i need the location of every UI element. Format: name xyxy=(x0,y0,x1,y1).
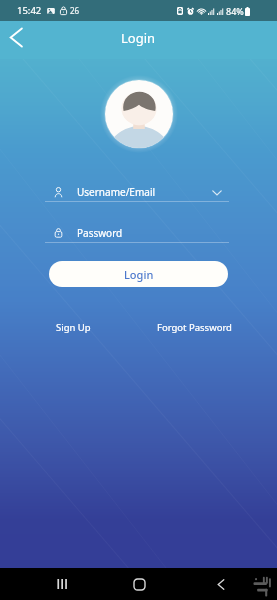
button[interactable]: Recent apps xyxy=(46,568,78,600)
staticText: 84% xyxy=(226,5,244,17)
staticText: Login xyxy=(124,267,154,282)
staticText: Username/Email xyxy=(77,185,219,199)
button[interactable]: Home xyxy=(123,568,155,600)
staticText: Password xyxy=(77,226,229,240)
staticText: 26 xyxy=(70,5,80,16)
button[interactable]: Forgot Password xyxy=(157,321,232,334)
staticText: Sign Up xyxy=(56,321,91,334)
button[interactable]: Sign Up xyxy=(56,321,91,334)
staticText: 15:42 xyxy=(17,4,42,17)
button[interactable]: Password xyxy=(45,223,229,243)
button[interactable]: Back xyxy=(0,22,36,58)
staticText: Forgot Password xyxy=(157,321,232,334)
button[interactable]: Username/Email xyxy=(45,182,229,202)
button[interactable]: Back xyxy=(205,568,237,600)
staticText: Login xyxy=(121,29,156,47)
button[interactable]: Login xyxy=(49,261,228,287)
